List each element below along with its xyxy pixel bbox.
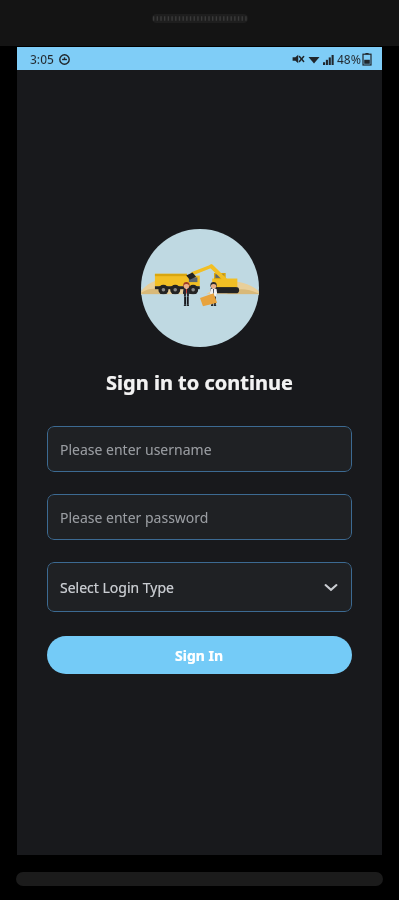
button[interactable]: Please enter username xyxy=(47,426,352,472)
other: Expand login type options xyxy=(323,579,339,595)
button[interactable]: Sign In xyxy=(47,636,352,674)
staticText: 48% xyxy=(337,51,361,67)
staticText: Please enter password xyxy=(60,508,209,527)
staticText: 3:05 xyxy=(30,51,54,67)
staticText: Sign in to continue xyxy=(106,369,293,396)
button[interactable]: Please enter password xyxy=(47,494,352,540)
button[interactable]: Select Login Type xyxy=(47,562,352,612)
staticText: Select Login Type xyxy=(60,578,174,597)
staticText: Sign In xyxy=(175,646,224,665)
staticText: Please enter username xyxy=(60,440,212,459)
